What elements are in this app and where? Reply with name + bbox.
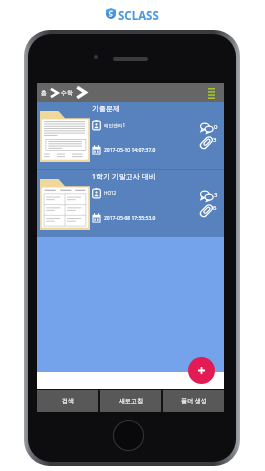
staticText: 3 — [214, 191, 218, 199]
staticText: 수학 — [61, 89, 73, 97]
staticText: 홈 — [41, 89, 47, 97]
staticText: 폴더 생성 — [181, 397, 207, 405]
staticText: SCLASS — [118, 8, 159, 24]
staticText: 2017-05-08 17:55:53.0 — [104, 215, 156, 222]
button[interactable]: 검색 — [37, 390, 98, 412]
staticText: 0 — [214, 123, 218, 131]
button[interactable]: 폴더 생성 — [163, 390, 224, 412]
staticText: 검색 — [62, 397, 74, 405]
staticText: 6 — [213, 204, 217, 212]
button[interactable]: Menu — [204, 86, 218, 100]
staticText: 새로고침 — [119, 397, 143, 405]
button[interactable]: 1학기 기말고사 대비 — [37, 170, 224, 237]
staticText: 3 — [213, 136, 217, 144]
staticText: 1학기 기말고사 대비 — [92, 172, 156, 182]
staticText: HO12 — [104, 190, 117, 196]
staticText: 2017-05-10 14:07:37.0 — [104, 147, 156, 154]
staticText: 기출문제 — [92, 104, 120, 113]
button[interactable]: Add new — [188, 357, 215, 384]
button[interactable]: 기출문제 — [37, 102, 224, 169]
staticText: 메인관리1 — [104, 122, 126, 128]
button[interactable]: 새로고침 — [100, 390, 161, 412]
